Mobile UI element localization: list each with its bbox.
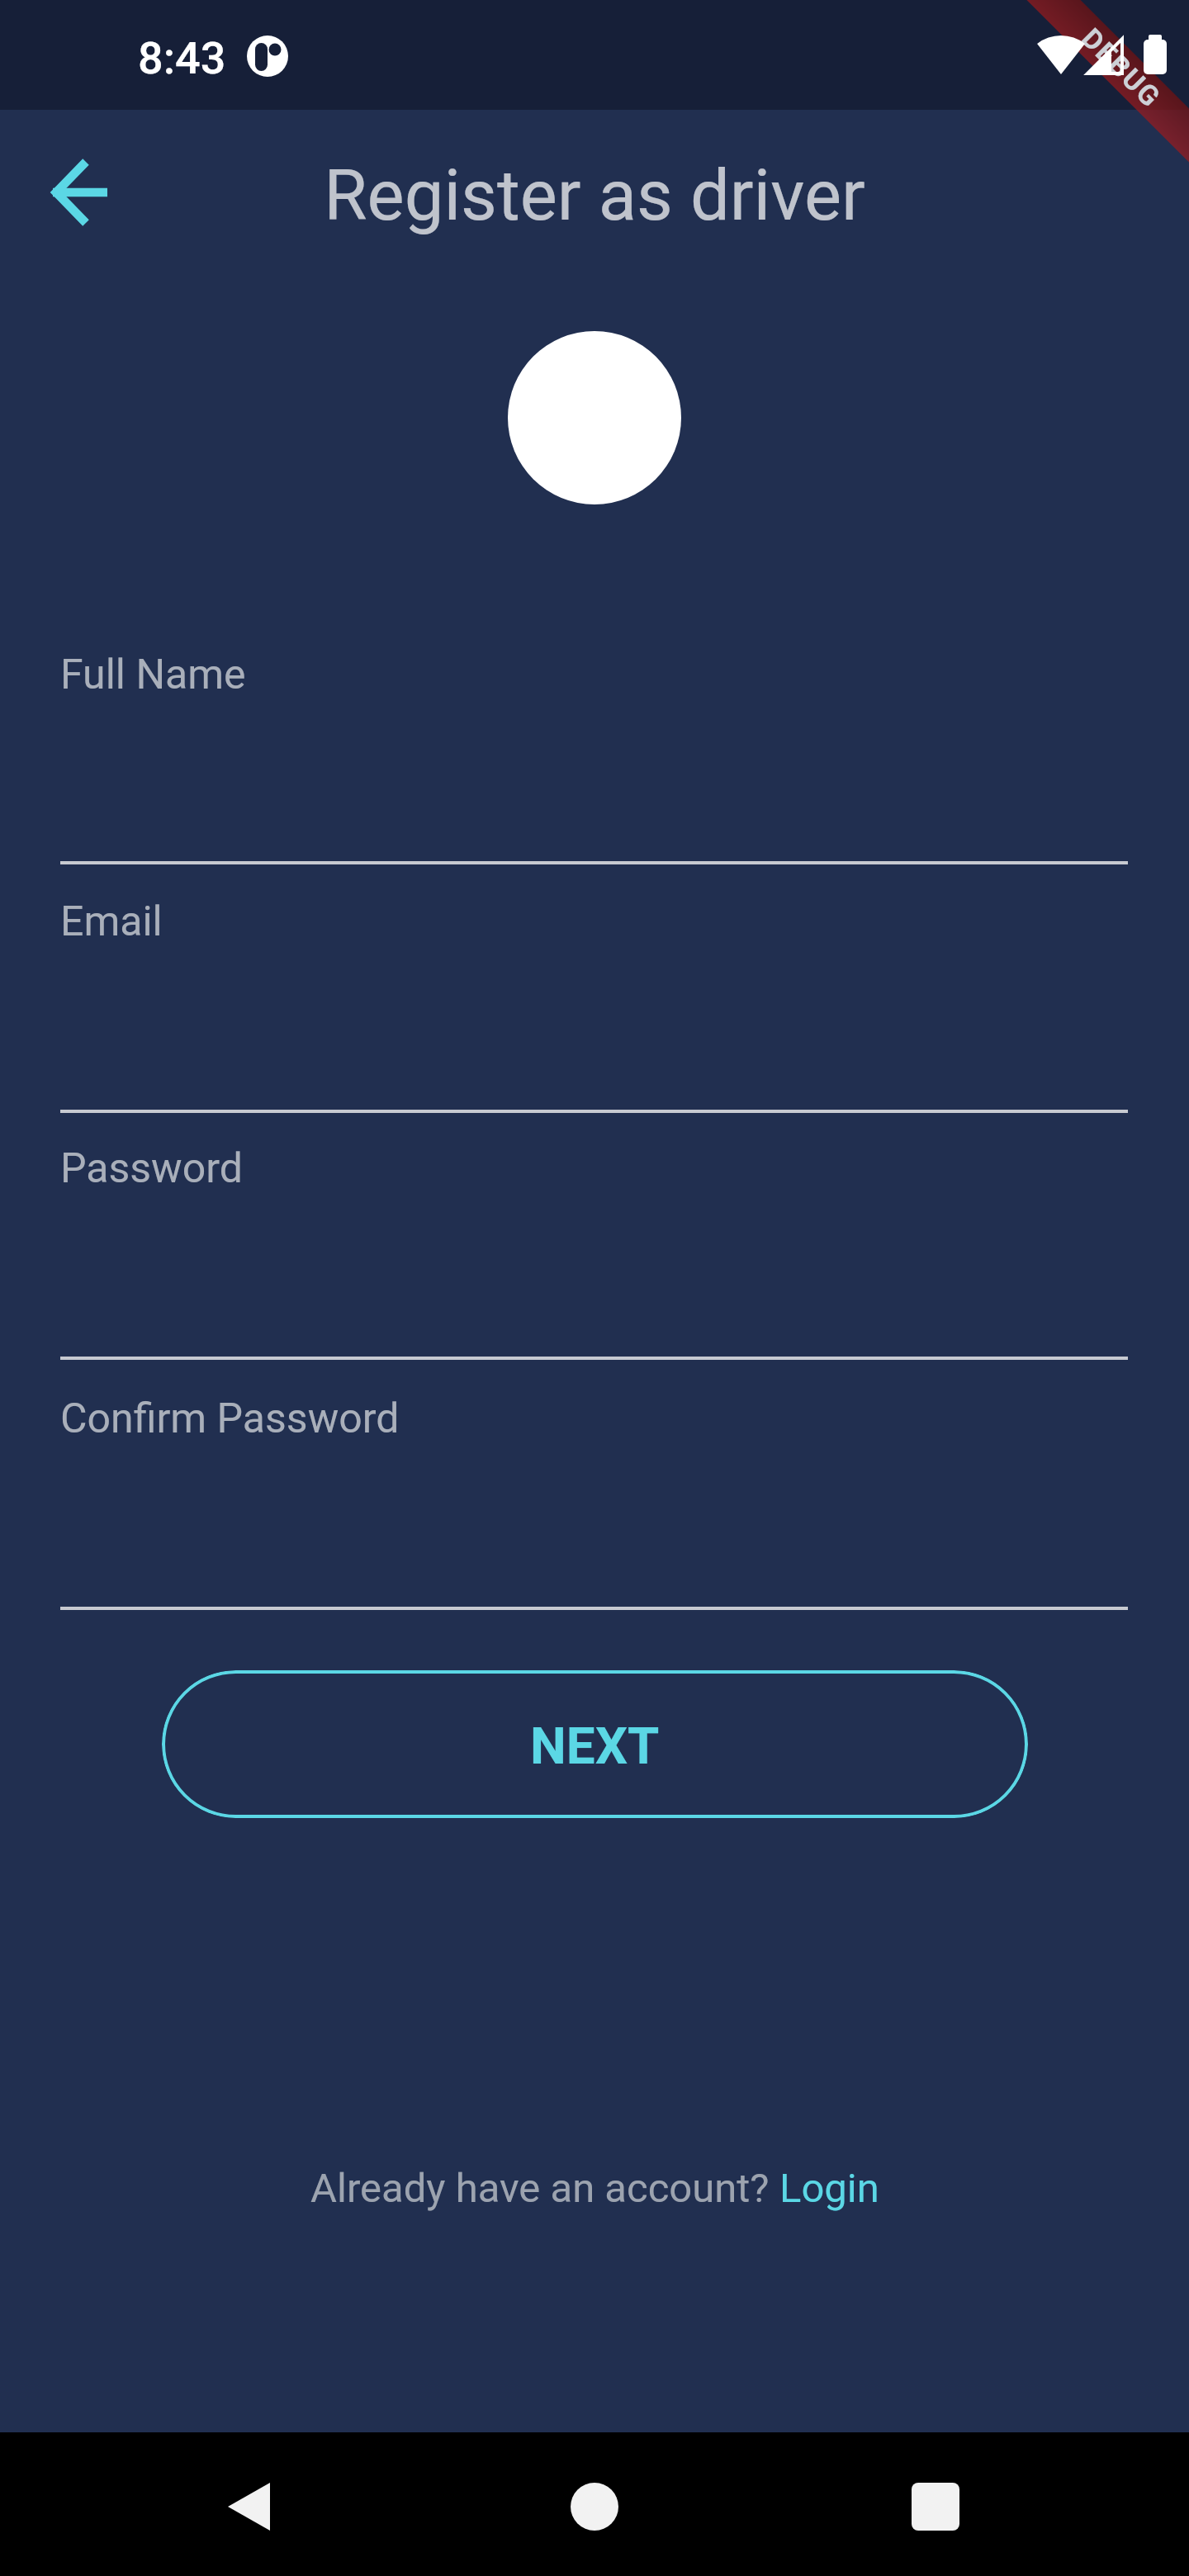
staticText: Email <box>60 897 163 946</box>
button[interactable] <box>545 2457 644 2556</box>
button[interactable]: NEXT <box>162 1670 1028 1818</box>
staticText: DEBUG <box>1075 22 1168 114</box>
button[interactable] <box>508 331 681 504</box>
staticText: Register as driver <box>0 154 1189 237</box>
staticText: Full Name <box>60 651 246 699</box>
staticText: Already have an account? <box>310 2165 779 2212</box>
button[interactable] <box>198 2457 297 2556</box>
staticText: Login <box>779 2165 879 2212</box>
button[interactable]: Login <box>779 2165 879 2212</box>
staticText: Confirm Password <box>60 1395 400 1443</box>
button[interactable] <box>862 2457 961 2556</box>
button[interactable] <box>50 1390 1139 1610</box>
staticText: 8:43 <box>138 32 226 84</box>
button[interactable] <box>29 138 136 245</box>
button[interactable] <box>50 893 1139 1113</box>
button[interactable] <box>50 1139 1139 1360</box>
staticText: NEXT <box>530 1716 660 1776</box>
staticText: Password <box>60 1144 243 1193</box>
button[interactable] <box>50 644 1139 864</box>
